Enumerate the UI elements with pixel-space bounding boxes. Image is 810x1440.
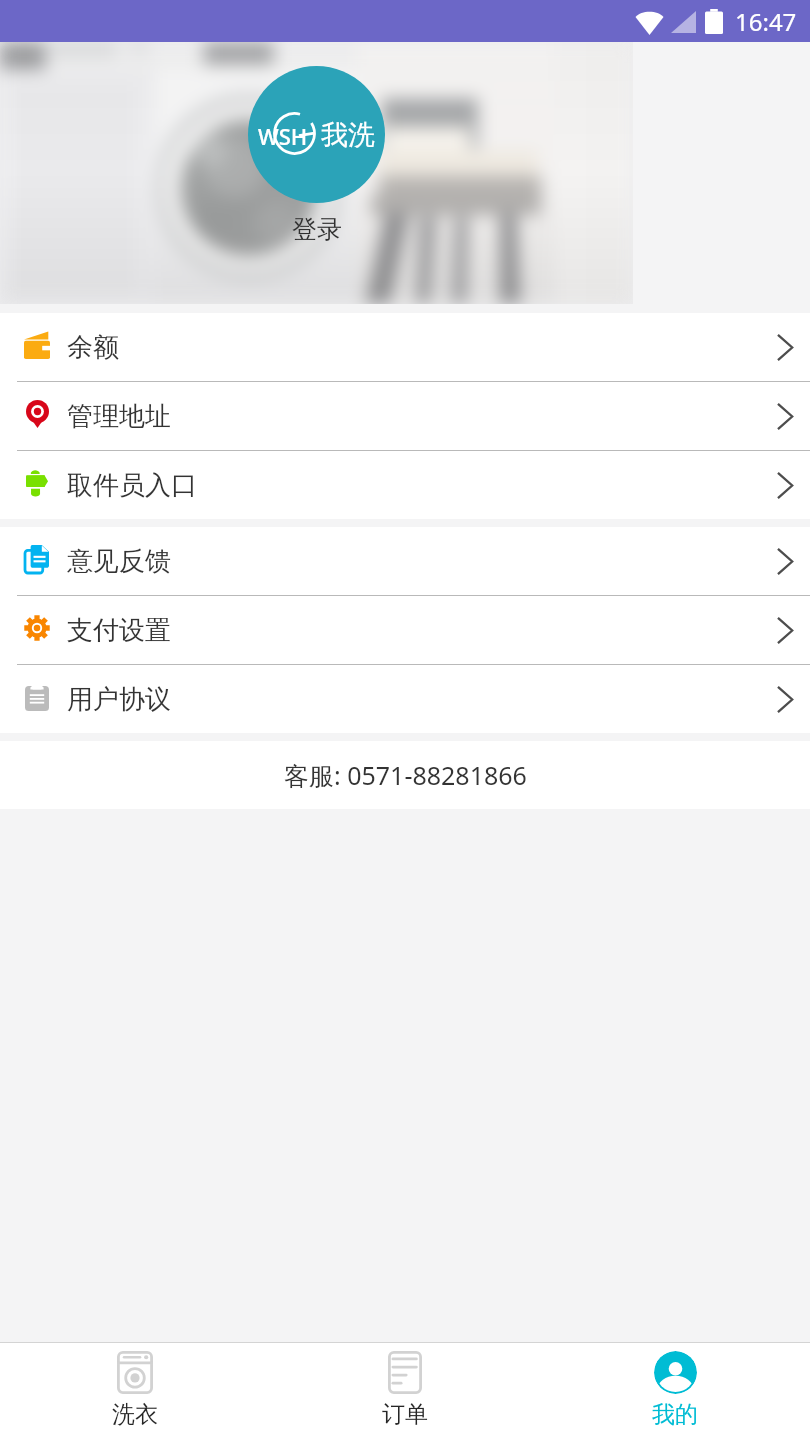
button[interactable]: 支付设置 — [0, 596, 810, 664]
staticText: 意见反馈 — [67, 545, 171, 578]
button[interactable]: 用户协议 — [0, 665, 810, 733]
staticText: 取件员入口 — [67, 469, 197, 502]
button[interactable]: 管理地址 — [0, 382, 810, 450]
button[interactable]: 客服: 0571-88281866 — [0, 741, 810, 809]
staticText: 订单 — [382, 1400, 428, 1429]
button[interactable]: 登录 — [292, 214, 342, 245]
staticText: 用户协议 — [67, 683, 171, 716]
button[interactable]: 取件员入口 — [0, 451, 810, 519]
staticText: 洗衣 — [112, 1400, 158, 1429]
button[interactable]: 意见反馈 — [0, 527, 810, 595]
staticText: 客服: 0571-88281866 — [284, 758, 527, 792]
staticText: WSH — [258, 121, 308, 151]
button[interactable]: 洗衣 — [0, 1343, 270, 1440]
staticText: 管理地址 — [67, 400, 171, 433]
button[interactable]: 我的 — [540, 1343, 810, 1440]
button[interactable]: 余额 — [0, 313, 810, 381]
button[interactable]: Login logo — [248, 66, 385, 203]
staticText: 我的 — [652, 1400, 698, 1429]
button[interactable]: 订单 — [270, 1343, 540, 1440]
staticText: 16:47 — [735, 5, 797, 38]
staticText: 我洗 — [321, 118, 375, 152]
staticText: 余额 — [67, 331, 119, 364]
staticText: 支付设置 — [67, 614, 171, 647]
staticText: 登录 — [292, 214, 342, 245]
